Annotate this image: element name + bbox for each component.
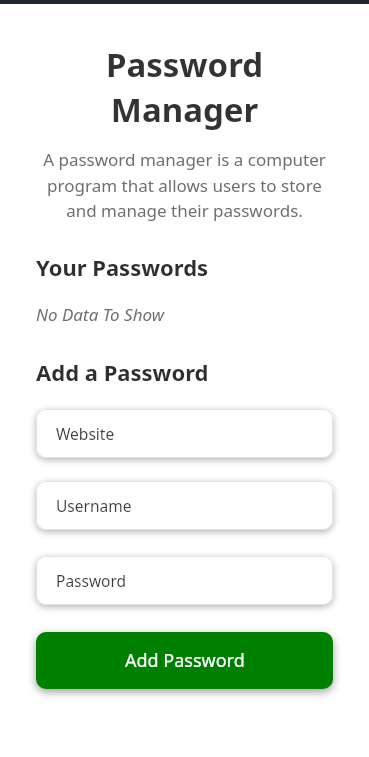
staticText: A password manager is a computer program… [36, 148, 333, 222]
staticText: Your Passwords [36, 252, 209, 282]
staticText: Password [56, 570, 127, 591]
button[interactable]: Add Password [36, 632, 333, 689]
staticText: Website [56, 423, 115, 444]
staticText: Password Manager [36, 42, 333, 132]
staticText: Add Password [125, 648, 245, 673]
button[interactable]: Website [36, 409, 333, 458]
staticText: Username [56, 495, 132, 516]
button[interactable]: Username [36, 481, 333, 530]
staticText: Add a Password [36, 357, 209, 387]
staticText: No Data To Show [36, 303, 164, 326]
button[interactable]: Password [36, 556, 333, 605]
